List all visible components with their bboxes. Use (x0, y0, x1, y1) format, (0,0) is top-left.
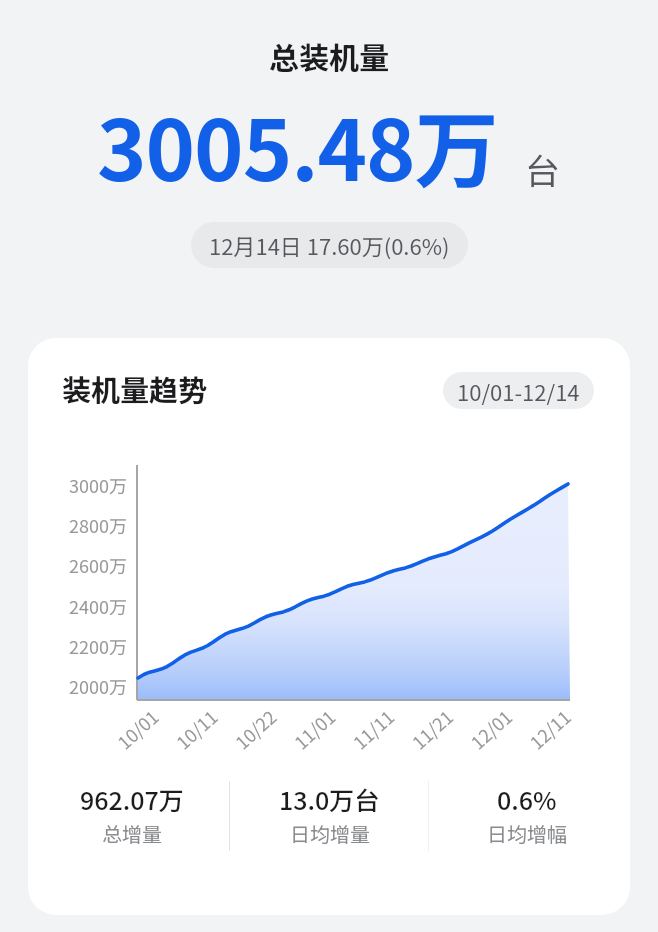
staticText: 962.07万 (80, 781, 184, 817)
button[interactable]: 12月14日 17.60万(0.6%) (191, 222, 468, 268)
button[interactable]: 962.07万 (33, 781, 231, 848)
staticText: 总装机量 (269, 34, 389, 77)
staticText: 日均增幅 (487, 819, 567, 848)
staticText: 13.0万台 (279, 781, 380, 817)
staticText: 12月14日 17.60万(0.6%) (209, 229, 450, 261)
staticText: 装机量趋势 (62, 367, 208, 409)
staticText: 总增量 (102, 819, 162, 848)
button[interactable]: 0.6% (428, 781, 625, 848)
staticText: 日均增量 (290, 819, 370, 848)
staticText: 0.6% (497, 781, 557, 817)
button[interactable]: 10/01-12/14 (443, 372, 594, 409)
staticText: 10/01-12/14 (457, 375, 580, 407)
staticText: 3005.48万 (97, 84, 498, 206)
staticText: 台 (525, 143, 561, 194)
button[interactable]: 13.0万台 (231, 781, 428, 848)
